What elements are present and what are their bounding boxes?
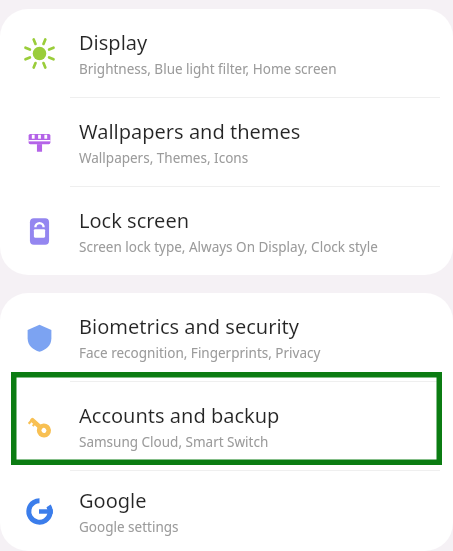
button[interactable]: Google [0,471,453,551]
staticText: Accounts and backup [79,402,280,429]
staticText: Wallpapers and themes [79,118,301,145]
staticText: Screen lock type, Always On Display, Clo… [79,238,378,256]
staticText: Lock screen [79,207,190,234]
button[interactable]: Display [0,9,453,98]
button[interactable]: Accounts and backup [0,382,453,471]
staticText: Biometrics and security [79,313,299,340]
staticText: Google settings [79,518,179,536]
staticText: Google [79,487,147,514]
staticText: Face recognition, Fingerprints, Privacy [79,344,321,362]
button[interactable]: Wallpapers and themes [0,98,453,187]
button[interactable]: Lock screen [0,187,453,275]
staticText: Brightness, Blue light filter, Home scre… [79,60,337,78]
staticText: Wallpapers, Themes, Icons [79,149,249,167]
other: Highlighted: Accounts and backup [11,372,442,465]
staticText: Samsung Cloud, Smart Switch [79,433,269,451]
staticText: Display [79,29,148,56]
button[interactable]: Biometrics and security [0,293,453,382]
